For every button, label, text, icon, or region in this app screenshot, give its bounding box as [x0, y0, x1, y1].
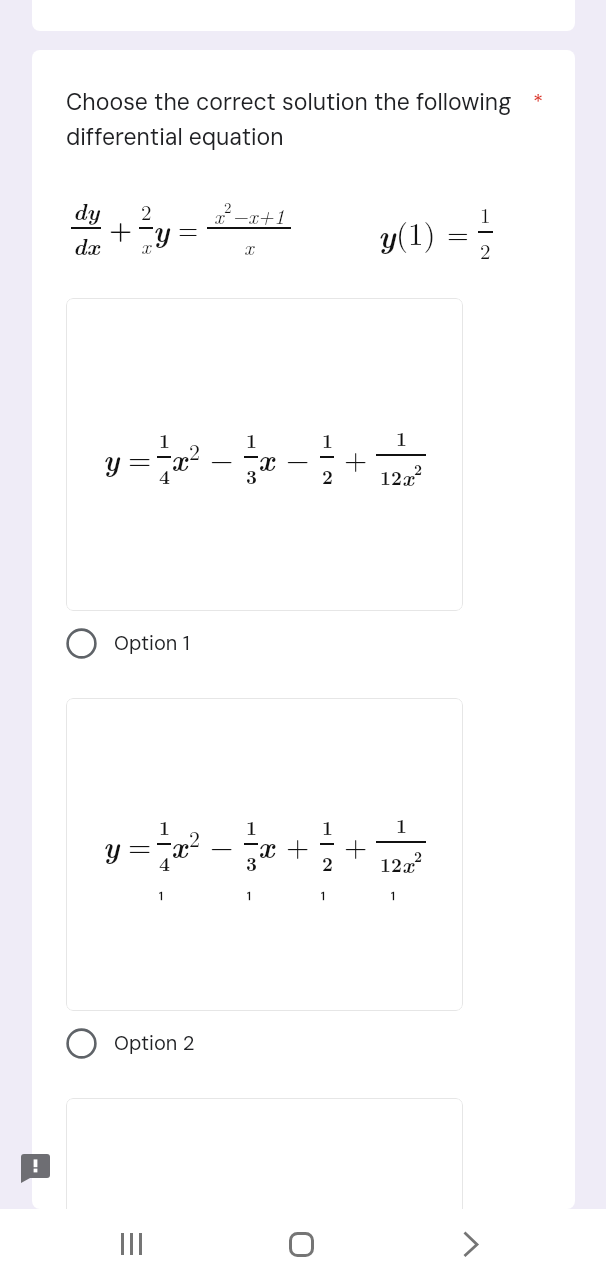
staticText: 1: [391, 889, 395, 903]
staticText: 1: [159, 813, 170, 840]
staticText: x: [258, 437, 275, 479]
staticText: 1: [321, 889, 325, 903]
staticText: 2: [322, 462, 333, 489]
staticText: 1: [322, 813, 333, 840]
staticText: +: [109, 210, 133, 247]
staticText: 1: [247, 889, 251, 903]
staticText: x: [258, 824, 275, 866]
staticText: 2: [322, 849, 333, 876]
button[interactable]: Back: [435, 1209, 507, 1280]
staticText: 1: [396, 811, 407, 838]
staticText: dy: [73, 194, 100, 227]
staticText: x: [171, 437, 188, 479]
staticText: =: [128, 436, 152, 479]
staticText: 12: [380, 463, 402, 490]
staticText: 2: [480, 235, 491, 265]
staticText: 1: [159, 889, 163, 903]
staticText: =: [447, 212, 469, 252]
staticText: x: [402, 849, 414, 880]
staticText: y: [103, 824, 120, 866]
staticText: =: [128, 823, 152, 866]
staticText: dx: [73, 229, 100, 262]
staticText: 2: [189, 435, 201, 466]
staticText: 1: [246, 426, 257, 453]
staticText: 3: [246, 462, 257, 489]
staticText: 4: [159, 462, 170, 489]
button[interactable]: Option 2: [66, 1026, 195, 1060]
staticText: x: [244, 231, 254, 261]
staticText: 1: [246, 813, 257, 840]
staticText: −: [210, 823, 234, 866]
staticText: x: [402, 462, 414, 493]
button[interactable]: Report a problem: [19, 1152, 53, 1186]
staticText: 4: [159, 849, 170, 876]
staticText: 2: [189, 822, 201, 853]
staticText: x: [141, 230, 151, 260]
staticText: y: [378, 211, 396, 256]
staticText: Option 2: [114, 1030, 195, 1056]
staticText: +: [286, 823, 310, 866]
staticText: +: [344, 823, 368, 866]
staticText: 12: [380, 850, 402, 877]
staticText: Option 1: [114, 630, 190, 656]
staticText: 3: [246, 849, 257, 876]
staticText: −: [210, 436, 234, 479]
staticText: y: [103, 437, 120, 479]
staticText: −: [286, 436, 310, 479]
staticText: 2: [141, 196, 152, 226]
staticText: *: [533, 88, 544, 115]
staticText: x: [171, 824, 188, 866]
staticText: 2: [224, 196, 232, 217]
button[interactable]: Home: [265, 1209, 337, 1280]
staticText: 1: [159, 426, 170, 453]
staticText: (1): [396, 210, 436, 254]
staticText: Choose the correct solution the followin…: [66, 87, 512, 117]
staticText: differential equation: [66, 122, 284, 152]
staticText: 1: [396, 424, 407, 451]
staticText: +: [344, 436, 368, 479]
staticText: 1: [480, 199, 491, 229]
staticText: 2: [414, 459, 423, 479]
button[interactable]: Recents: [96, 1209, 168, 1280]
staticText: =: [178, 210, 199, 247]
staticText: 2: [414, 846, 423, 866]
staticText: y: [153, 208, 170, 250]
button[interactable]: Option 1: [66, 626, 190, 660]
staticText: x: [214, 200, 224, 230]
staticText: −x+1: [232, 200, 285, 230]
staticText: 1: [322, 426, 333, 453]
